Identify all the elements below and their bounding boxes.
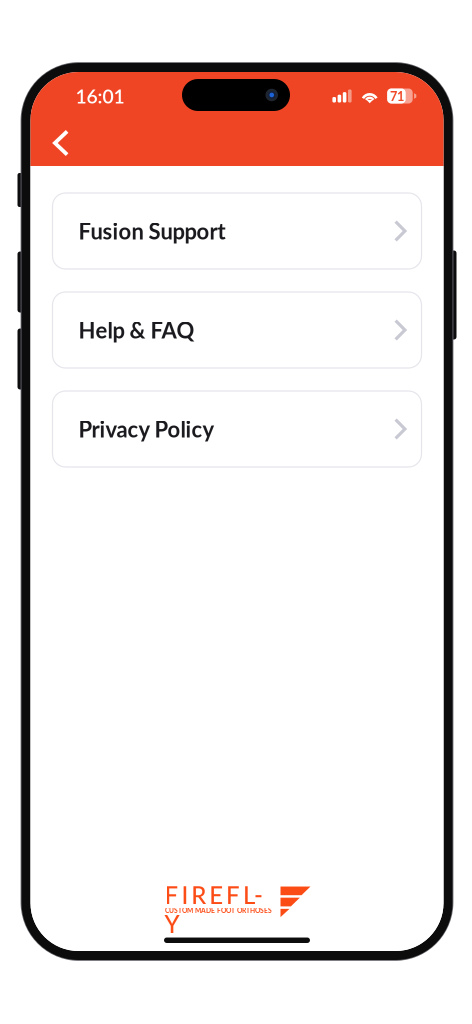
staticText: Fusion Support (78, 218, 225, 244)
staticText: Privacy Policy (78, 416, 214, 442)
button[interactable]: Help & FAQ (52, 292, 421, 368)
staticText: Help & FAQ (78, 317, 194, 343)
staticText: FIREFLY (164, 880, 271, 909)
button[interactable]: Privacy Policy (52, 391, 421, 467)
staticText: 71 (390, 88, 404, 104)
button[interactable]: Fusion Support (52, 193, 421, 269)
staticText: 16:01 (75, 84, 124, 108)
button[interactable]: Back (39, 121, 83, 165)
staticText: CUSTOM MADE FOOT ORTHOSES (165, 906, 272, 914)
